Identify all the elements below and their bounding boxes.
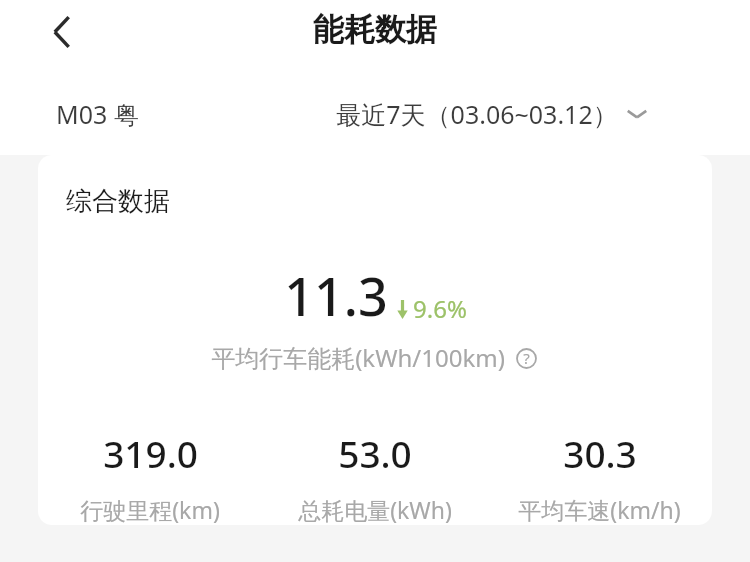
- staticText: 53.0: [338, 428, 412, 478]
- button[interactable]: Back: [36, 6, 88, 58]
- staticText: M03 粤: [56, 97, 139, 131]
- staticText: 平均车速(km/h): [518, 494, 681, 523]
- staticText: ?: [523, 348, 530, 368]
- button[interactable]: 319.0: [38, 426, 262, 525]
- staticText: 行驶里程(km): [80, 494, 220, 523]
- staticText: 综合数据: [66, 185, 170, 218]
- staticText: 最近7天（03.06~03.12）: [336, 97, 618, 131]
- button[interactable]: M03 粤: [46, 93, 149, 135]
- staticText: 319.0: [103, 428, 198, 478]
- staticText: 能耗数据: [313, 10, 437, 49]
- staticText: 9.6%: [413, 292, 467, 325]
- button[interactable]: 30.3: [487, 426, 712, 525]
- button[interactable]: Help: [513, 345, 539, 371]
- button[interactable]: 53.0: [262, 426, 487, 525]
- staticText: 平均行车能耗(kWh/100km): [211, 341, 505, 374]
- staticText: 30.3: [563, 428, 637, 478]
- staticText: 总耗电量(kWh): [298, 494, 452, 523]
- button[interactable]: 最近7天（03.06~03.12）: [332, 93, 652, 135]
- staticText: 11.3: [284, 260, 388, 331]
